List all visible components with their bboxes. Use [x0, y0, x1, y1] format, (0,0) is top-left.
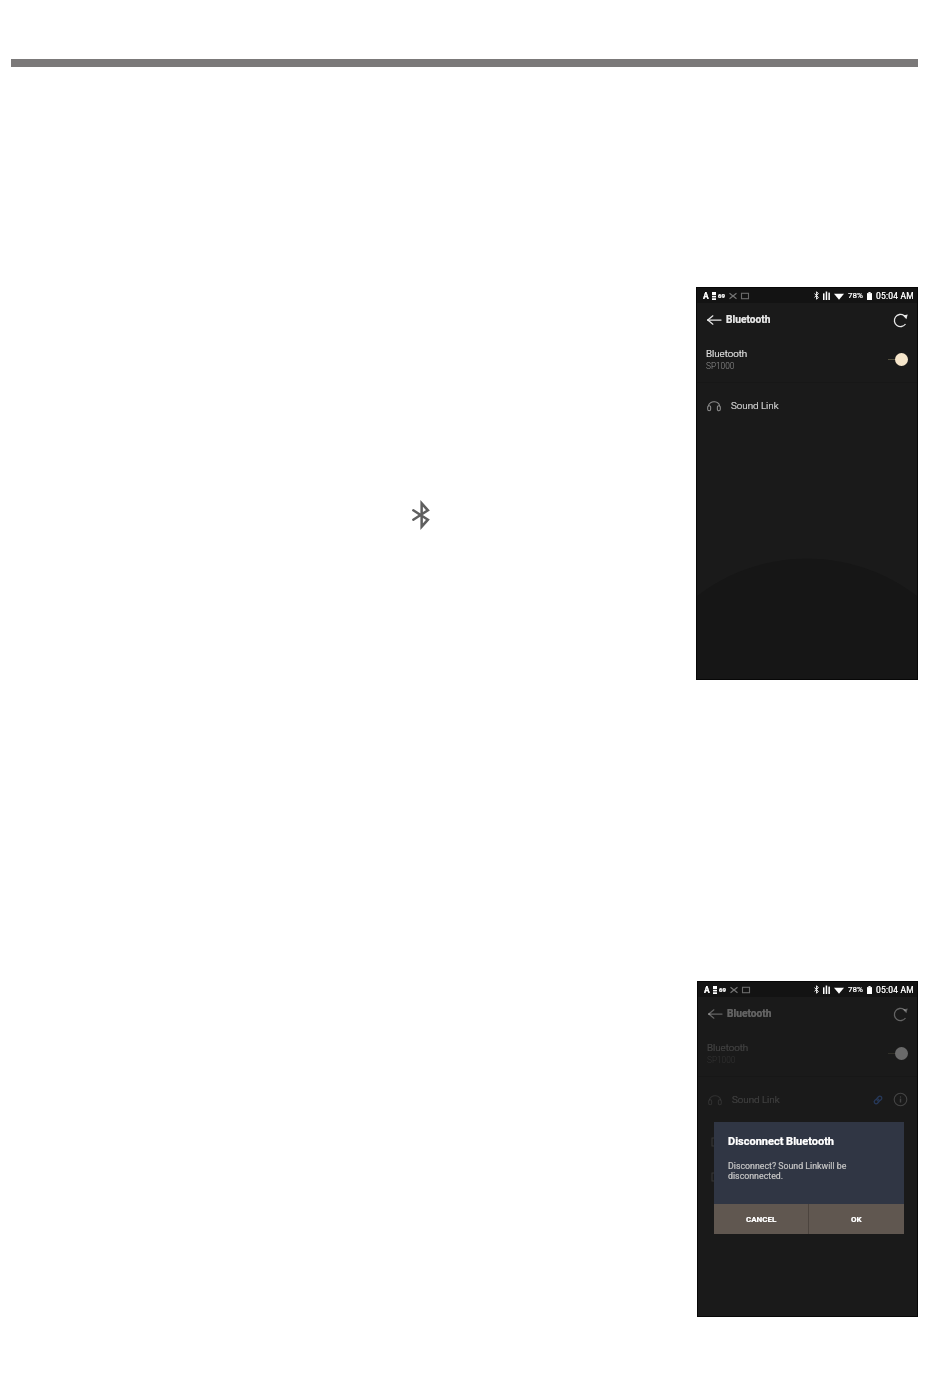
staticText: Sound Link	[731, 400, 779, 411]
button[interactable]: Sound Link	[707, 383, 908, 428]
staticText: Bluetooth	[707, 1042, 749, 1053]
staticText: A	[704, 985, 710, 995]
staticText: Bluetooth	[706, 348, 748, 359]
button[interactable]: Bluetooth on/off	[888, 1047, 908, 1060]
staticText: 78%	[848, 985, 863, 994]
button[interactable]: Connected	[872, 1094, 884, 1106]
staticText: OK	[851, 1215, 862, 1224]
staticText: CANCEL	[746, 1215, 777, 1224]
button[interactable]: Back	[704, 310, 724, 330]
button[interactable]: CANCEL	[714, 1204, 808, 1234]
staticText: 69	[719, 986, 726, 993]
staticText: SP1000	[706, 361, 735, 371]
button[interactable]: Refresh	[890, 1004, 910, 1024]
button[interactable]: Sound Link	[708, 1077, 908, 1122]
staticText: Bluetooth	[727, 1008, 772, 1020]
staticText: 05:04 AM	[876, 985, 914, 995]
staticText: 69	[718, 292, 725, 299]
button[interactable]: Refresh	[890, 310, 910, 330]
staticText: Disconnect Bluetooth	[728, 1135, 835, 1148]
staticText: SP1000	[707, 1055, 736, 1065]
button[interactable]: OK	[809, 1204, 904, 1234]
button[interactable]: Back	[705, 1004, 725, 1024]
staticText: 78%	[848, 291, 863, 300]
staticText: Sound Link	[732, 1094, 780, 1105]
staticText: 05:04 AM	[876, 291, 914, 301]
button[interactable]: Device info	[893, 1092, 908, 1107]
button[interactable]: Bluetooth	[706, 337, 908, 382]
button[interactable]: Bluetooth	[707, 1031, 908, 1076]
staticText: Bluetooth	[726, 314, 771, 326]
button[interactable]: Bluetooth on/off	[888, 353, 908, 366]
staticText: Disconnect? Sound Linkwill be disconnect…	[728, 1161, 847, 1182]
staticText: A	[703, 291, 709, 301]
